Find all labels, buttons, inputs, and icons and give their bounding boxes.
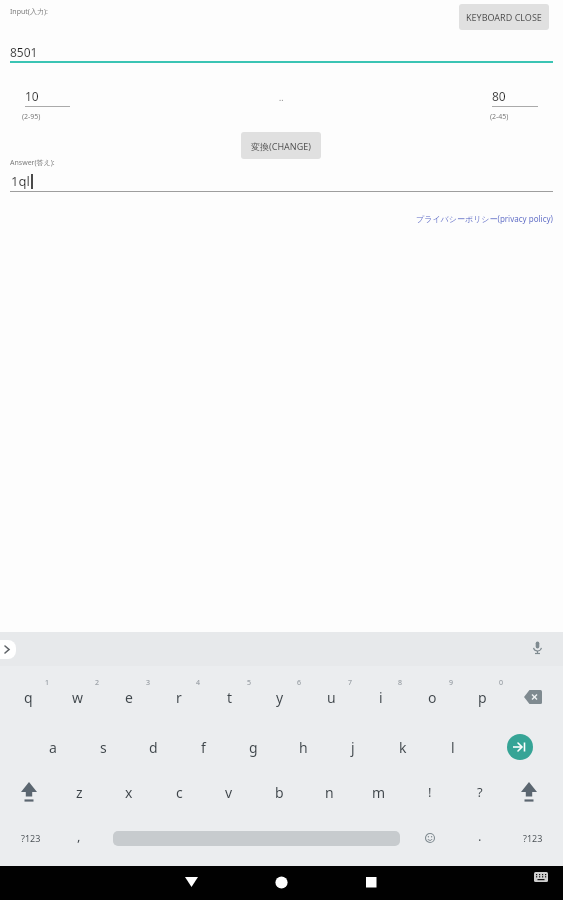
staticText: e	[125, 688, 133, 707]
staticText: m	[372, 783, 386, 802]
staticText: 9	[449, 678, 454, 688]
staticText: s	[100, 738, 107, 757]
staticText: f	[201, 738, 206, 757]
button[interactable]	[104, 769, 154, 815]
button[interactable]	[205, 674, 255, 720]
staticText: z	[76, 783, 83, 802]
staticText: (2-95)	[22, 112, 41, 122]
button[interactable]	[178, 724, 228, 770]
button[interactable]	[228, 724, 278, 770]
staticText: y	[276, 688, 284, 707]
staticText: ?123	[21, 832, 41, 844]
button[interactable]	[428, 724, 478, 770]
button[interactable]	[78, 724, 128, 770]
staticText: 80	[492, 88, 506, 104]
button[interactable]	[328, 724, 378, 770]
button[interactable]: プライバシーポリシー(privacy policy)	[0, 210, 553, 226]
staticText: p	[478, 688, 487, 707]
button[interactable]	[507, 734, 533, 760]
staticText: i	[379, 688, 383, 707]
staticText: KEYBOARD CLOSE	[466, 11, 542, 23]
staticText: 6	[297, 678, 302, 688]
staticText: o	[428, 688, 437, 707]
staticText: h	[299, 738, 308, 757]
staticText: ?	[477, 783, 483, 801]
button[interactable]	[275, 876, 288, 889]
staticText: 4	[196, 678, 201, 688]
staticText: プライバシーポリシー(privacy policy)	[416, 213, 553, 224]
button[interactable]	[532, 641, 543, 655]
button[interactable]	[154, 769, 204, 815]
button[interactable]	[154, 674, 204, 720]
staticText: 8	[398, 678, 403, 688]
button[interactable]	[254, 769, 304, 815]
button[interactable]	[128, 724, 178, 770]
staticText: ?123	[523, 832, 543, 844]
staticText: d	[149, 738, 158, 757]
staticText: ,	[77, 827, 81, 845]
button[interactable]	[255, 674, 305, 720]
button[interactable]	[54, 769, 104, 815]
staticText: 3	[146, 678, 151, 688]
button[interactable]	[28, 724, 78, 770]
staticText: .	[478, 827, 482, 845]
button[interactable]: KEYBOARD CLOSE	[459, 4, 549, 30]
staticText: a	[49, 738, 57, 757]
staticText: 10	[25, 88, 39, 104]
staticText: u	[327, 688, 336, 707]
button[interactable]	[304, 769, 354, 815]
staticText: b	[275, 783, 284, 802]
button[interactable]	[3, 674, 53, 720]
button[interactable]	[354, 769, 404, 815]
staticText: w	[72, 688, 84, 707]
staticText: g	[249, 738, 258, 757]
staticText: v	[225, 783, 233, 802]
staticText: 変換(CHANGE)	[251, 140, 311, 152]
staticText: (2-45)	[490, 112, 509, 122]
staticText: 8501	[10, 44, 38, 60]
staticText: t	[227, 688, 233, 707]
button[interactable]	[0, 640, 16, 659]
staticText: n	[325, 783, 334, 802]
staticText: Input(入力):	[10, 7, 48, 17]
staticText: 7	[348, 678, 353, 688]
button[interactable]	[20, 782, 38, 802]
button[interactable]	[306, 674, 356, 720]
button[interactable]	[278, 724, 328, 770]
button[interactable]	[366, 877, 377, 888]
staticText: 2	[95, 678, 100, 688]
staticText: r	[176, 688, 182, 707]
staticText: q	[24, 688, 33, 707]
staticText: Answer(答え):	[10, 158, 55, 168]
button[interactable]	[185, 877, 198, 887]
button[interactable]	[534, 872, 548, 882]
staticText: 1	[45, 678, 50, 688]
staticText: x	[125, 783, 133, 802]
button[interactable]	[425, 833, 435, 843]
staticText: l	[451, 738, 455, 757]
staticText: k	[399, 738, 407, 757]
staticText: 5	[247, 678, 252, 688]
button[interactable]	[407, 674, 457, 720]
button[interactable]: 変換(CHANGE)	[241, 132, 321, 159]
staticText: 0	[499, 678, 504, 688]
staticText: !	[428, 783, 432, 801]
button[interactable]	[356, 674, 406, 720]
button[interactable]	[520, 782, 538, 802]
staticText: j	[351, 738, 355, 757]
button[interactable]	[524, 690, 543, 704]
button[interactable]	[457, 674, 507, 720]
button[interactable]	[104, 674, 154, 720]
button[interactable]	[53, 674, 103, 720]
staticText: 1ql	[11, 172, 30, 190]
staticText: c	[176, 783, 183, 802]
button[interactable]	[204, 769, 254, 815]
button[interactable]	[378, 724, 428, 770]
staticText: ..	[279, 92, 284, 103]
